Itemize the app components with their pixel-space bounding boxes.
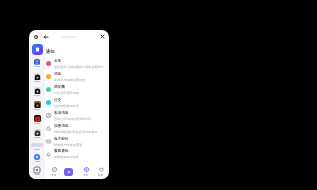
staticText: 最近联系人和收藏夹列表同步更新中 bbox=[54, 65, 104, 69]
staticText: 通知 bbox=[46, 49, 55, 54]
button[interactable]: 社交 bbox=[46, 96, 109, 109]
button[interactable]: Back bbox=[43, 34, 48, 39]
button[interactable]: Contact bbox=[33, 129, 41, 138]
staticText: 好友动态更新提醒 bbox=[54, 91, 79, 95]
staticText: 收藏 bbox=[98, 173, 104, 176]
staticText: 朋友圈 bbox=[54, 85, 65, 90]
button[interactable]: More bbox=[31, 143, 43, 147]
staticText: 端到端加密的安全会话记录备份 bbox=[54, 130, 98, 134]
button[interactable]: Contact bbox=[33, 87, 41, 96]
button[interactable]: 发现 bbox=[50, 167, 58, 176]
staticText: 电子邮件 bbox=[54, 137, 69, 142]
staticText: 消息 bbox=[83, 173, 89, 176]
button[interactable]: App bbox=[32, 44, 43, 55]
button[interactable]: 收藏 bbox=[97, 167, 105, 176]
staticText: 重要通知 bbox=[54, 149, 69, 154]
staticText: 名单 bbox=[54, 59, 62, 64]
button[interactable]: Camera bbox=[34, 167, 40, 175]
staticText: 邮箱账户同步设置项 bbox=[54, 143, 82, 147]
button[interactable]: History bbox=[33, 34, 38, 39]
staticText: 系统重要提示信息 bbox=[54, 155, 79, 159]
staticText: 新消息与提醒设置管理 bbox=[54, 78, 85, 82]
button[interactable]: 消息 bbox=[82, 167, 90, 176]
staticText: 社交网络账号同步 bbox=[54, 104, 79, 108]
button[interactable]: Contact bbox=[33, 101, 41, 110]
button[interactable]: Add bbox=[34, 154, 40, 162]
staticText: 发现 bbox=[51, 173, 57, 176]
button[interactable]: Contact bbox=[33, 73, 41, 82]
staticText: 仅自己可见的私密消息内容 bbox=[54, 117, 92, 121]
button[interactable]: Create bbox=[64, 168, 73, 176]
button[interactable]: 加密消息 bbox=[46, 122, 109, 135]
button[interactable]: Contact bbox=[33, 59, 41, 67]
staticText: 加密消息 bbox=[54, 124, 69, 129]
button[interactable]: Contact bbox=[33, 115, 41, 124]
button[interactable]: 电子邮件 bbox=[46, 135, 109, 148]
button[interactable]: 重要通知 bbox=[46, 148, 109, 160]
button[interactable]: 消息 bbox=[46, 70, 109, 83]
button[interactable]: 名单 bbox=[46, 57, 109, 70]
staticText: 消息 bbox=[54, 72, 62, 77]
staticText: 社交 bbox=[54, 98, 62, 103]
button[interactable]: Close bbox=[100, 34, 105, 39]
button[interactable]: 朋友圈 bbox=[46, 83, 109, 96]
staticText: 私信消息 bbox=[54, 111, 69, 116]
button[interactable]: 私信消息 bbox=[46, 109, 109, 122]
